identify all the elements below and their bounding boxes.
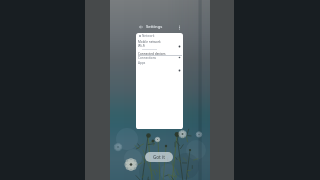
staticText: Settings	[146, 24, 163, 30]
staticText: Network	[142, 34, 155, 38]
button[interactable]: Network	[136, 34, 183, 38]
button[interactable]: Connected devices	[136, 52, 183, 56]
button[interactable]: Navigate up	[137, 23, 145, 31]
staticText: Connections	[138, 56, 157, 60]
button[interactable]: Connections	[136, 56, 183, 60]
button[interactable]: More options	[175, 23, 183, 31]
staticText: Got it	[153, 154, 165, 160]
staticText: Apps	[138, 61, 146, 65]
staticText: Wi-Fi	[138, 44, 146, 48]
button[interactable]: Mobile network	[136, 40, 183, 44]
button[interactable]: Got it	[145, 152, 173, 162]
button[interactable]: Wi-Fi	[136, 44, 183, 48]
staticText: Mobile network	[138, 40, 161, 44]
button[interactable]: Apps	[136, 61, 183, 65]
staticText: Connected devices	[138, 52, 166, 56]
